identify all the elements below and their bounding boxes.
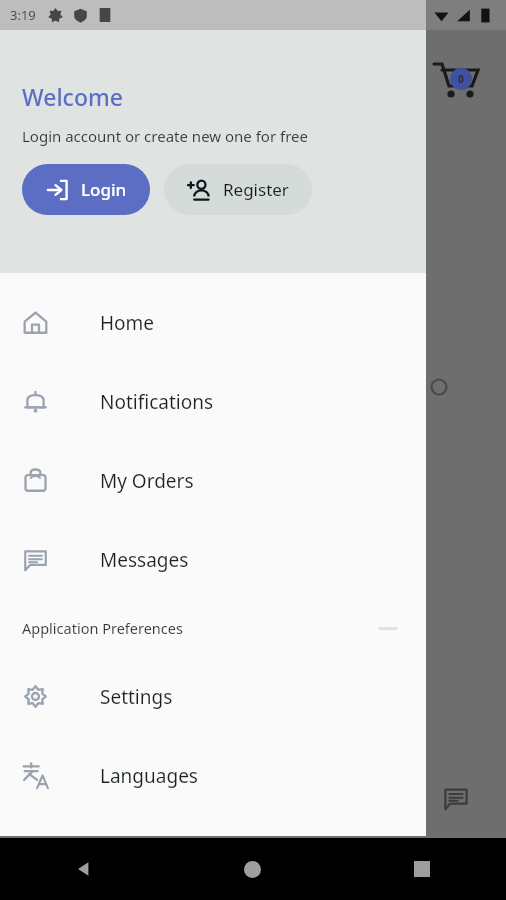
staticText: Login	[81, 178, 127, 201]
staticText: Settings	[100, 684, 173, 710]
staticText: 0	[458, 72, 464, 86]
staticText: 3:19	[10, 6, 36, 24]
staticText: Notifications	[100, 389, 214, 415]
button[interactable]: Cart	[424, 46, 486, 108]
button[interactable]: Login	[22, 164, 150, 215]
staticText: Register	[223, 178, 289, 201]
button[interactable]: My Orders	[0, 441, 426, 520]
button[interactable]: Application Preferences	[0, 599, 426, 657]
button[interactable]: Languages	[0, 736, 426, 815]
button[interactable]: Register	[164, 164, 312, 215]
staticText: Application Preferences	[22, 618, 183, 638]
staticText: Welcome	[22, 81, 123, 112]
button[interactable]: Back	[0, 838, 168, 900]
staticText: Languages	[100, 763, 198, 789]
button[interactable]: Recents	[337, 838, 506, 900]
button[interactable]: Settings	[0, 657, 426, 736]
button[interactable]: Notifications	[0, 362, 426, 441]
staticText: Messages	[100, 547, 189, 573]
staticText: Login account or create new one for free	[22, 126, 308, 146]
button[interactable]: Home	[0, 283, 426, 362]
staticText: Home	[100, 310, 155, 336]
button[interactable]: Messages	[436, 778, 476, 818]
staticText: My Orders	[100, 468, 194, 494]
button[interactable]: Home	[168, 838, 337, 900]
button[interactable]: Messages	[0, 520, 426, 599]
